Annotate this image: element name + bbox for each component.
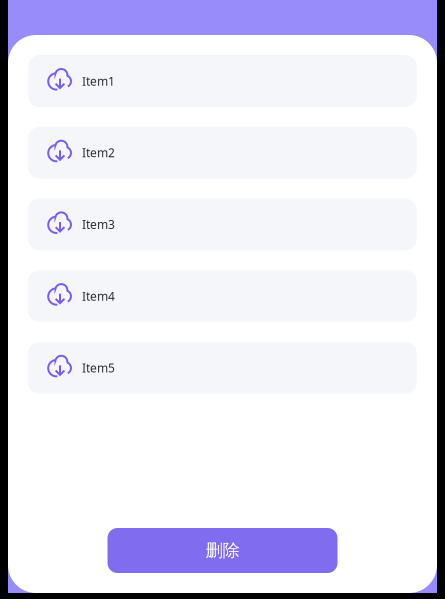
staticText: Item5 bbox=[82, 360, 115, 376]
staticText: Item1 bbox=[82, 73, 115, 89]
button[interactable]: Item3 bbox=[28, 198, 417, 250]
button[interactable]: Item1 bbox=[28, 55, 417, 107]
staticText: Item3 bbox=[82, 216, 115, 232]
staticText: 删除 bbox=[205, 540, 239, 561]
button[interactable]: Item5 bbox=[28, 342, 417, 394]
staticText: Item2 bbox=[82, 145, 115, 161]
button[interactable]: 删除 bbox=[107, 528, 337, 573]
staticText: Item4 bbox=[82, 288, 115, 304]
button[interactable]: Item2 bbox=[28, 127, 417, 179]
button[interactable]: Item4 bbox=[28, 270, 417, 322]
